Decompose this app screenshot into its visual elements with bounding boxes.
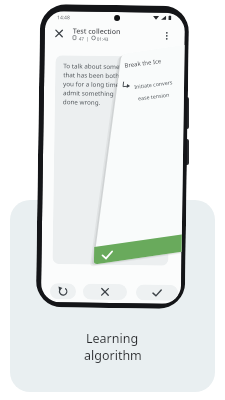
staticText: 01:43 [97, 36, 109, 42]
staticText: ease tension [137, 90, 170, 102]
button[interactable] [50, 283, 76, 299]
button[interactable] [136, 284, 178, 301]
button[interactable] [103, 54, 184, 263]
staticText: admit something [63, 88, 114, 98]
staticText: To talk about something [63, 61, 135, 71]
staticText: 47 | [79, 35, 90, 42]
button[interactable] [83, 284, 127, 300]
staticText: Learning [86, 330, 139, 347]
staticText: that has been bothering [63, 70, 135, 80]
staticText: 14:48 [57, 14, 70, 21]
staticText: algorithm [84, 347, 142, 364]
staticText: Test collection [73, 26, 121, 37]
staticText: you for a long time; [63, 79, 121, 89]
staticText: done wrong. [63, 97, 101, 107]
button[interactable] [53, 25, 68, 40]
staticText: Initiate convers [134, 78, 173, 90]
staticText: Break the Ice [124, 57, 162, 70]
button[interactable] [163, 29, 175, 43]
button[interactable] [52, 55, 171, 266]
